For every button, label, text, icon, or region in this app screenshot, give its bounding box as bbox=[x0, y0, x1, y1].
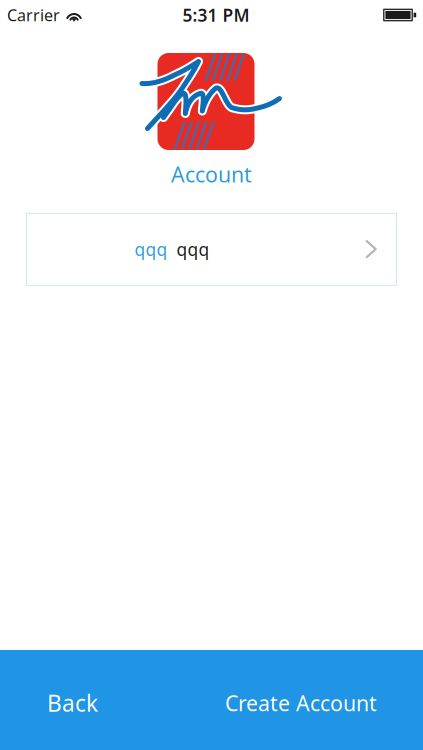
staticText: Account bbox=[171, 160, 252, 188]
button[interactable]: qqq bbox=[26, 213, 396, 285]
staticText: Back bbox=[47, 688, 98, 718]
staticText: Carrier bbox=[7, 4, 60, 26]
staticText: Create Account bbox=[225, 689, 377, 717]
staticText: qqq bbox=[134, 238, 167, 261]
staticText: qqq bbox=[176, 238, 209, 261]
button[interactable]: Create Account bbox=[180, 650, 423, 750]
button[interactable]: Back bbox=[0, 650, 180, 750]
staticText: 5:31 PM bbox=[182, 3, 249, 26]
